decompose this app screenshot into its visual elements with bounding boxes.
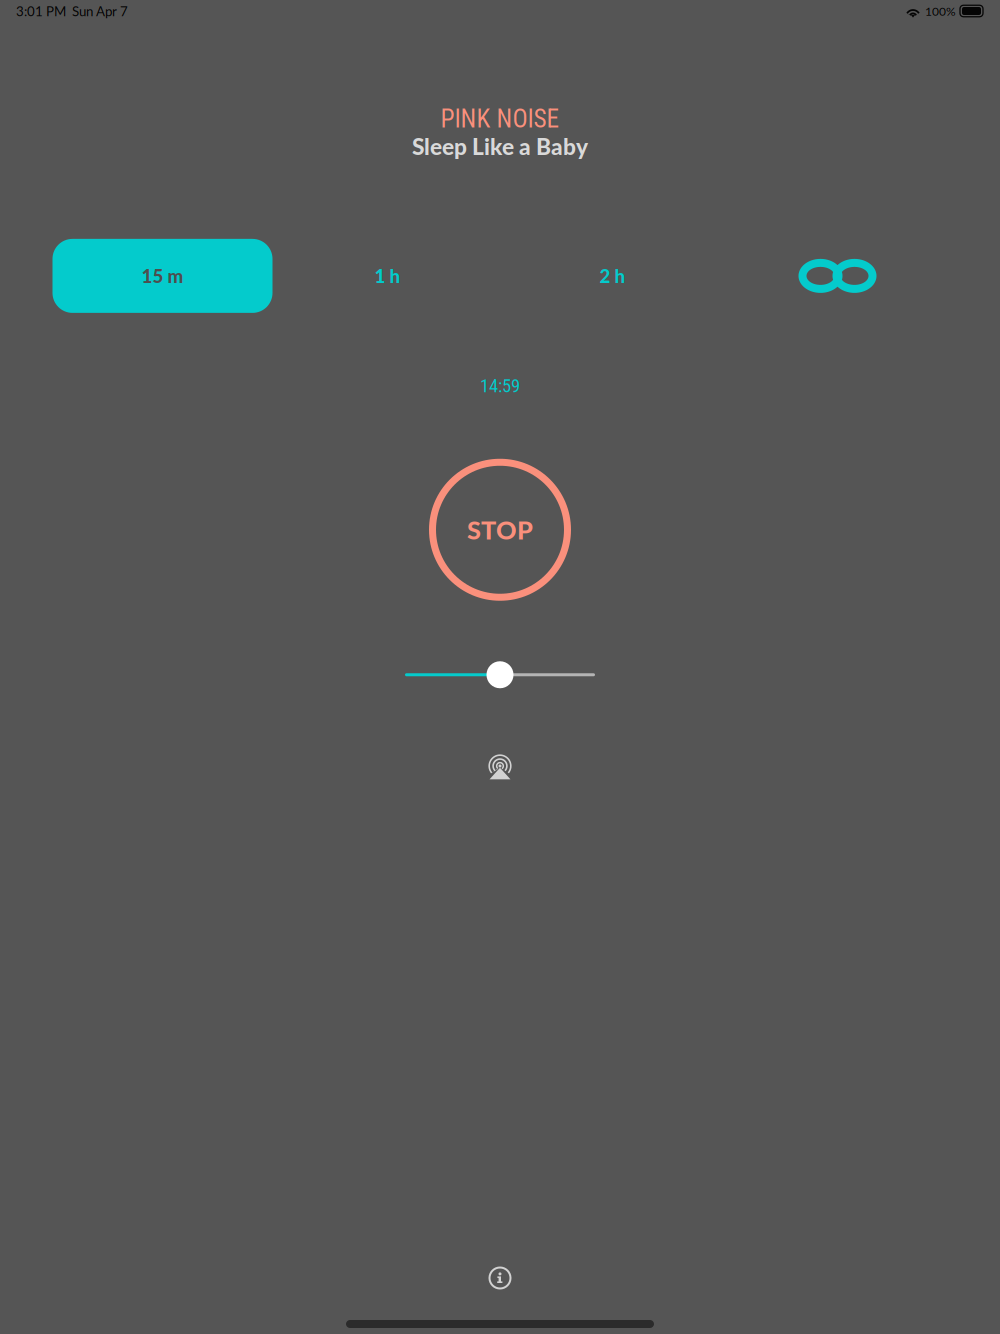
staticText: 14:59 <box>480 375 520 397</box>
button[interactable]: AirPlay output <box>477 747 523 787</box>
staticText: 100% <box>925 4 956 18</box>
button[interactable]: Play continuously <box>725 239 950 313</box>
staticText: Sun Apr 7 <box>72 3 128 19</box>
button[interactable]: 2 h <box>500 239 725 313</box>
button[interactable]: Information <box>478 1256 522 1300</box>
staticText: 3:01 PM <box>16 3 66 19</box>
staticText: STOP <box>467 515 533 545</box>
staticText: PINK NOISE <box>440 104 559 134</box>
button[interactable]: 1 h <box>275 239 500 313</box>
staticText: 15 m <box>141 265 183 287</box>
staticText: Sleep Like a Baby <box>412 133 588 160</box>
staticText: 1 h <box>374 265 400 287</box>
staticText: 2 h <box>599 265 625 287</box>
button[interactable]: STOP <box>425 455 575 605</box>
button[interactable]: 15 m <box>50 239 275 313</box>
